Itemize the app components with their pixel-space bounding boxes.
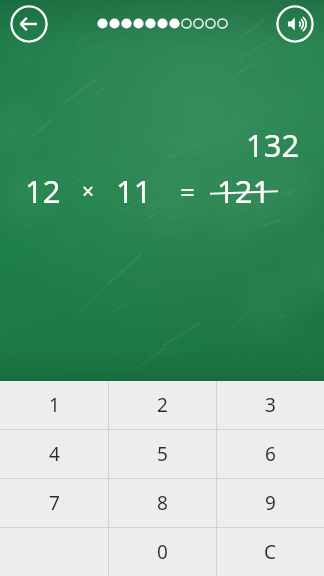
- button[interactable]: 2: [108, 381, 216, 429]
- staticText: ×: [82, 177, 95, 206]
- button[interactable]: 3: [216, 381, 324, 429]
- staticText: 8: [157, 490, 168, 516]
- staticText: 12: [25, 170, 61, 212]
- staticText: 1: [49, 392, 60, 418]
- button: [0, 527, 108, 576]
- staticText: 5: [157, 441, 168, 467]
- staticText: 6: [265, 441, 276, 467]
- staticText: 9: [265, 490, 276, 516]
- button[interactable]: Sound: [276, 5, 314, 43]
- staticText: =: [180, 174, 195, 209]
- staticText: 3: [265, 392, 276, 418]
- staticText: 4: [49, 441, 60, 467]
- button[interactable]: 0: [108, 527, 216, 576]
- staticText: 0: [157, 539, 168, 565]
- staticText: C: [264, 539, 277, 565]
- button[interactable]: 6: [216, 429, 324, 478]
- staticText: 121: [217, 170, 271, 212]
- staticText: 11: [116, 170, 152, 212]
- staticText: 7: [49, 490, 60, 516]
- button[interactable]: 8: [108, 478, 216, 527]
- staticText: 2: [157, 392, 168, 418]
- button[interactable]: C: [216, 527, 324, 576]
- button[interactable]: 5: [108, 429, 216, 478]
- button[interactable]: Back: [10, 5, 48, 43]
- button[interactable]: 4: [0, 429, 108, 478]
- button[interactable]: 7: [0, 478, 108, 527]
- button[interactable]: 9: [216, 478, 324, 527]
- staticText: 132: [246, 124, 300, 166]
- button[interactable]: 1: [0, 381, 108, 429]
